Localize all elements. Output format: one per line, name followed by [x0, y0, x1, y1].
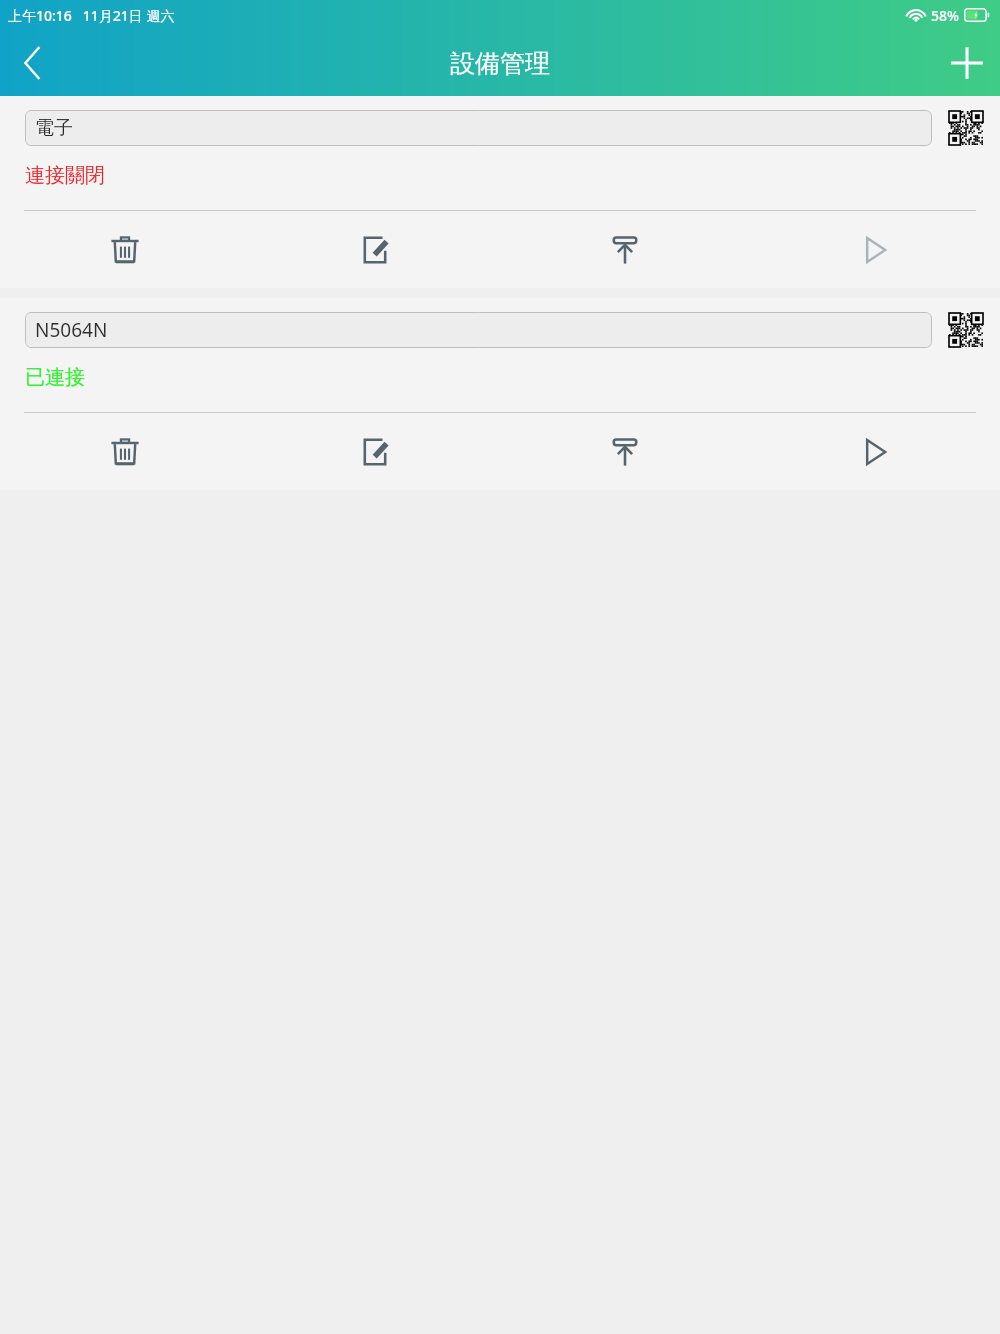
button[interactable]: Play — [750, 211, 1000, 288]
button[interactable]: Upload — [500, 413, 750, 490]
button[interactable]: Upload — [500, 211, 750, 288]
button[interactable]: Add device — [934, 30, 1000, 96]
button[interactable]: Edit — [250, 413, 500, 490]
staticText: 已連接 — [25, 365, 85, 390]
staticText: 上午10:16 11月21日 週六 — [8, 6, 175, 25]
button[interactable]: Delete — [0, 413, 250, 490]
button[interactable]: Play — [750, 413, 1000, 490]
staticText: 電子 — [35, 116, 73, 140]
button[interactable]: Delete — [0, 211, 250, 288]
button[interactable]: Edit — [250, 211, 500, 288]
button[interactable]: 電子 — [25, 110, 932, 146]
staticText: 連接關閉 — [25, 163, 105, 188]
button[interactable]: QR code — [946, 310, 986, 350]
staticText: N5064N — [35, 317, 108, 343]
button[interactable]: N5064N — [25, 312, 932, 348]
staticText: 58% — [931, 6, 959, 25]
staticText: 設備管理 — [450, 48, 550, 79]
button[interactable]: Back — [0, 30, 66, 96]
button[interactable]: QR code — [946, 108, 986, 148]
